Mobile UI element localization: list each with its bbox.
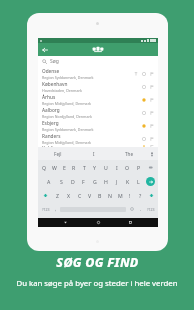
button[interactable]: W: [49, 160, 59, 174]
button[interactable]: Logo: [92, 46, 104, 53]
button[interactable]: Kolding: [38, 145, 158, 147]
button[interactable]: T: [79, 160, 89, 174]
staticText: J: [116, 178, 118, 185]
button[interactable]: Add to favourites: [141, 136, 146, 141]
button[interactable]: G: [89, 174, 100, 188]
button[interactable]: Aalborg: [38, 106, 158, 119]
button[interactable]: Search: [144, 174, 157, 188]
button[interactable]: R: [69, 160, 79, 174]
button[interactable]: Fejl: [40, 147, 76, 160]
button[interactable]: L: [133, 174, 144, 188]
button[interactable]: P: [133, 160, 144, 174]
staticText: The: [125, 151, 133, 157]
button[interactable]: Add to favourites: [141, 84, 146, 89]
staticText: Fejl: [54, 151, 62, 157]
staticText: H: [104, 178, 108, 185]
staticText: X: [67, 192, 71, 199]
button[interactable]: V: [85, 188, 95, 202]
staticText: M: [118, 192, 123, 199]
staticText: Z: [56, 192, 59, 199]
button[interactable]: N: [105, 188, 115, 202]
button[interactable]: Remove from favourites: [141, 123, 146, 128]
other: Country flag: [149, 110, 154, 115]
other: Country flag: [149, 136, 154, 141]
staticText: F: [82, 178, 85, 185]
button[interactable]: U: [100, 160, 111, 174]
button[interactable]: K: [122, 174, 133, 188]
other: Temperature: [133, 71, 138, 76]
button[interactable]: X: [63, 188, 74, 202]
staticText: O: [125, 164, 130, 171]
button[interactable]: M: [115, 188, 125, 202]
staticText: Region Nordjylland, Denmark: [42, 114, 92, 119]
staticText: ?123: [147, 207, 155, 212]
button[interactable]: J: [111, 174, 122, 188]
button[interactable]: B: [95, 188, 105, 202]
staticText: T: [83, 164, 86, 171]
staticText: ,: [55, 206, 57, 212]
button[interactable]: !: [125, 188, 135, 202]
staticText: I: [93, 151, 95, 157]
button[interactable]: Randers: [38, 132, 158, 145]
button[interactable]: Q: [39, 160, 49, 174]
button[interactable]: The: [111, 147, 146, 160]
staticText: P: [137, 164, 141, 171]
staticText: W: [52, 164, 57, 171]
button[interactable]: ,: [53, 202, 58, 216]
button[interactable]: Shift: [145, 188, 157, 202]
staticText: D: [71, 178, 75, 185]
button[interactable]: Y: [89, 160, 100, 174]
button[interactable]: København: [38, 80, 158, 93]
button[interactable]: Shift: [39, 188, 52, 202]
button[interactable]: D: [67, 174, 78, 188]
other: Country flag: [149, 84, 154, 89]
staticText: I: [116, 164, 118, 171]
button[interactable]: Søg: [38, 56, 158, 67]
button[interactable]: I: [111, 160, 122, 174]
button[interactable]: Remove from favourites: [141, 145, 146, 147]
staticText: C: [78, 192, 82, 199]
button[interactable]: ?123: [40, 202, 51, 216]
button[interactable]: Add to favourites: [141, 71, 146, 76]
button[interactable]: .: [138, 202, 143, 216]
button[interactable]: Remove from favourites: [141, 97, 146, 102]
button[interactable]: I: [76, 147, 111, 160]
staticText: V: [88, 192, 92, 199]
staticText: E: [63, 164, 66, 171]
button[interactable]: S: [55, 174, 67, 188]
button[interactable]: C: [74, 188, 85, 202]
button[interactable]: Backspace: [144, 160, 157, 174]
button[interactable]: Back: [38, 43, 51, 56]
button[interactable]: E: [59, 160, 69, 174]
staticText: U: [104, 164, 108, 171]
staticText: R: [72, 164, 76, 171]
button[interactable]: A: [43, 174, 55, 188]
button[interactable]: Voice input: [146, 147, 158, 160]
staticText: Y: [93, 164, 96, 171]
button[interactable]: Recent apps: [126, 218, 135, 227]
staticText: Region Syddanmark, Denmark: [42, 127, 94, 132]
staticText: København: [42, 81, 68, 87]
staticText: S: [60, 178, 63, 185]
button[interactable]: Z: [52, 188, 63, 202]
button[interactable]: Back: [61, 218, 70, 227]
other: Country flag: [149, 97, 154, 102]
staticText: A: [47, 178, 51, 185]
button[interactable]: O: [122, 160, 133, 174]
staticText: Region Midtjylland, Denmark: [42, 140, 92, 145]
button[interactable]: Århus: [38, 93, 158, 106]
button[interactable]: Add to favourites: [141, 110, 146, 115]
button[interactable]: H: [100, 174, 111, 188]
button[interactable]: Emoji: [128, 202, 136, 216]
button[interactable]: F: [78, 174, 89, 188]
staticText: Århus: [42, 94, 56, 100]
button[interactable]: ?123: [145, 202, 156, 216]
staticText: SØG OG FIND: [56, 254, 139, 271]
button[interactable]: Esbjerg: [38, 119, 158, 132]
button[interactable]: Odense: [38, 67, 158, 80]
staticText: Aalborg: [42, 107, 60, 113]
button[interactable]: Home: [94, 218, 103, 227]
staticText: Hovedstaden, Denmark: [42, 88, 82, 93]
button[interactable]: ?: [135, 188, 145, 202]
